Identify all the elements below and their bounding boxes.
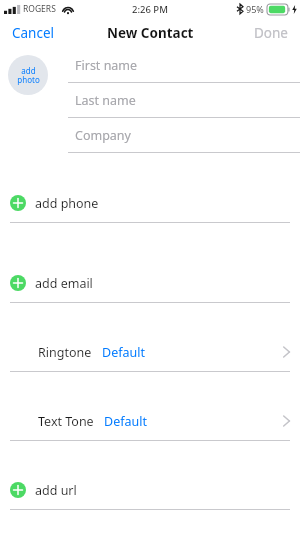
button[interactable]: Text Tone — [0, 408, 300, 441]
staticText: 2:26 PM — [132, 3, 168, 16]
staticText: add url — [35, 482, 77, 499]
staticText: add phone — [35, 195, 99, 212]
button[interactable]: add email — [0, 270, 300, 303]
staticText: Last name — [75, 92, 300, 109]
button[interactable]: Company — [68, 118, 300, 153]
button[interactable]: Done — [242, 20, 300, 46]
button[interactable]: Ringtone — [0, 339, 300, 372]
staticText: New Contact — [107, 24, 194, 42]
staticText: Cancel — [12, 24, 55, 42]
staticText: Default — [104, 413, 147, 430]
staticText: ROGERS — [23, 3, 56, 15]
button[interactable]: Add photo — [8, 55, 48, 95]
staticText: Done — [254, 24, 288, 42]
button[interactable]: add phone — [0, 190, 300, 223]
button[interactable]: Last name — [68, 83, 300, 118]
staticText: First name — [75, 57, 300, 74]
button[interactable]: Cancel — [0, 20, 67, 46]
staticText: Default — [102, 344, 145, 361]
staticText: 95% — [246, 3, 264, 15]
staticText: Company — [75, 127, 300, 144]
staticText: Text Tone — [38, 413, 94, 430]
button[interactable]: First name — [68, 48, 300, 83]
staticText: Ringtone — [38, 344, 92, 361]
button[interactable]: add url — [0, 477, 300, 510]
staticText: add email — [35, 275, 93, 292]
staticText: add photo — [17, 65, 40, 86]
